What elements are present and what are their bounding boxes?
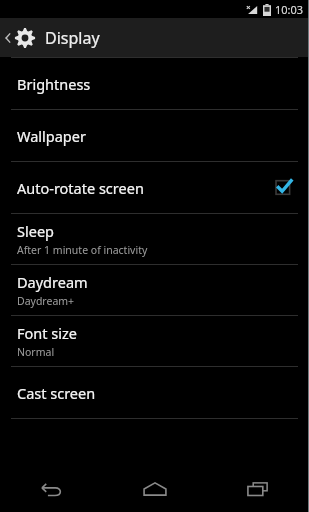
staticText: Normal bbox=[17, 345, 55, 359]
button[interactable]: Wallpaper bbox=[0, 110, 309, 161]
staticText: Brightness bbox=[17, 74, 91, 94]
button[interactable]: Up, Display bbox=[0, 18, 309, 57]
button[interactable]: Brightness bbox=[0, 58, 309, 109]
staticText: Display bbox=[45, 27, 100, 49]
staticText: After 1 minute of inactivity bbox=[17, 243, 148, 257]
button[interactable]: Back bbox=[0, 466, 103, 512]
staticText: Cast screen bbox=[17, 383, 96, 403]
button[interactable]: Daydream bbox=[0, 265, 309, 315]
staticText: Sleep bbox=[17, 221, 54, 241]
button[interactable]: Sleep bbox=[0, 214, 309, 264]
staticText: 10:03 bbox=[275, 2, 304, 17]
staticText: Font size bbox=[17, 323, 77, 343]
button[interactable]: Font size bbox=[0, 316, 309, 366]
button[interactable]: Home bbox=[103, 466, 206, 512]
staticText: Daydream bbox=[17, 272, 88, 292]
staticText: Daydream+ bbox=[17, 294, 75, 308]
button[interactable]: Recent apps bbox=[206, 466, 309, 512]
other: Auto-rotate screen checkbox bbox=[275, 179, 292, 196]
staticText: Auto-rotate screen bbox=[17, 178, 275, 198]
staticText: Wallpaper bbox=[17, 126, 86, 146]
button[interactable]: Cast screen bbox=[0, 367, 309, 418]
button[interactable]: Auto-rotate screen bbox=[0, 162, 309, 213]
